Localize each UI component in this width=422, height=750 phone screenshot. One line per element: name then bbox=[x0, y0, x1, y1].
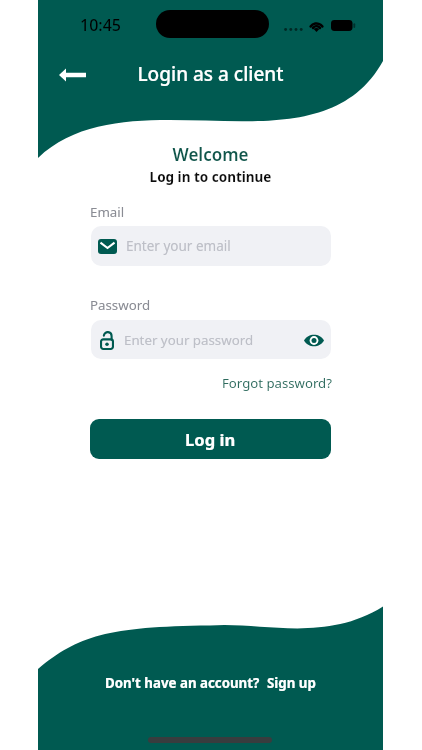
button[interactable]: Forgot password? bbox=[216, 368, 338, 398]
staticText: Log in bbox=[185, 428, 236, 451]
staticText: Email bbox=[90, 203, 125, 221]
staticText: Log in to continue bbox=[38, 168, 383, 186]
staticText: Sign up bbox=[267, 674, 316, 692]
staticText: 10:45 bbox=[80, 14, 121, 36]
button[interactable]: Back bbox=[50, 58, 94, 92]
staticText: Forgot password? bbox=[222, 374, 332, 392]
button[interactable]: Show password bbox=[304, 330, 324, 350]
staticText: Don't have an account? bbox=[105, 674, 267, 692]
button[interactable]: Enter your password bbox=[91, 320, 331, 359]
staticText: Welcome bbox=[38, 143, 383, 166]
staticText: Enter your email bbox=[126, 237, 231, 255]
button[interactable]: Log in bbox=[90, 419, 331, 459]
staticText: Password bbox=[90, 296, 151, 314]
staticText: Login as a client bbox=[38, 61, 383, 87]
staticText: Enter your password bbox=[124, 331, 304, 349]
button[interactable]: Enter your email bbox=[91, 226, 331, 266]
button[interactable]: Sign up bbox=[267, 674, 316, 692]
